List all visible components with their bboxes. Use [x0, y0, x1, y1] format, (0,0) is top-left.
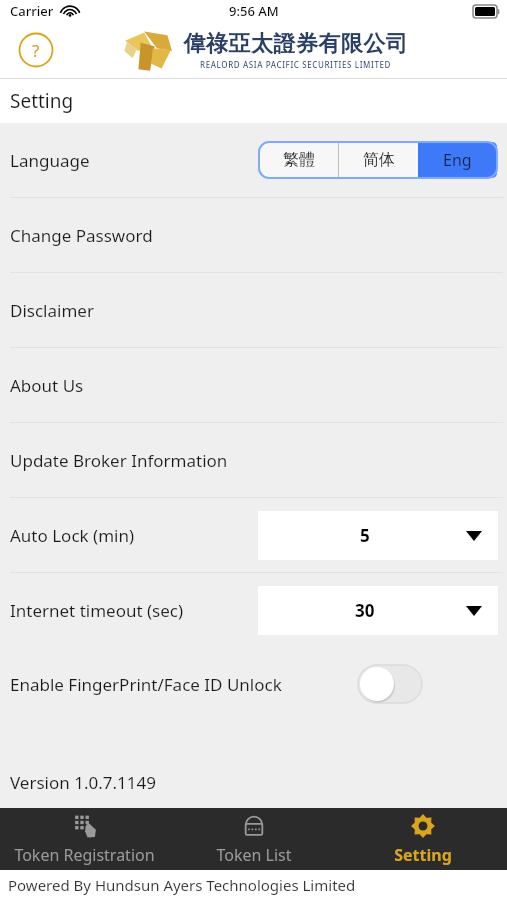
staticText: 9:56 AM	[229, 2, 279, 20]
button[interactable]: Update Broker Information	[0, 423, 507, 497]
button[interactable]: 5	[258, 511, 498, 560]
staticText: Token List	[216, 844, 292, 866]
button[interactable]: Help	[18, 32, 54, 68]
button[interactable]: Change Password	[0, 198, 507, 272]
button[interactable]: About Us	[0, 348, 507, 422]
staticText: Update Broker Information	[10, 449, 228, 472]
staticText: Change Password	[10, 224, 153, 247]
staticText: 5	[360, 524, 370, 547]
staticText: Enable FingerPrint/Face ID Unlock	[10, 673, 282, 696]
staticText: Language	[10, 149, 90, 172]
staticText: Carrier	[10, 2, 54, 20]
staticText: REALORD ASIA PACIFIC SECURITIES LIMITED	[200, 59, 392, 70]
button[interactable]: Token Registration	[0, 808, 169, 870]
staticText: Setting	[10, 88, 74, 114]
staticText: Disclaimer	[10, 299, 94, 322]
staticText: ?	[32, 39, 40, 62]
staticText: Setting	[394, 844, 452, 866]
staticText: 简体	[363, 150, 395, 170]
staticText: About Us	[10, 374, 84, 397]
staticText: 偉祿亞太證券有限公司	[183, 30, 408, 58]
button[interactable]: Token List	[169, 808, 338, 870]
button[interactable]: 简体	[339, 142, 418, 178]
button[interactable]: Disclaimer	[0, 273, 507, 347]
staticText: Auto Lock (min)	[10, 524, 135, 547]
staticText: Internet timeout (sec)	[10, 599, 184, 622]
button[interactable]: 繁體	[259, 142, 338, 178]
staticText: Token Registration	[14, 844, 155, 866]
button[interactable]: Setting	[338, 808, 507, 870]
staticText: 繁體	[283, 150, 315, 170]
staticText: Powered By Hundsun Ayers Technologies Li…	[8, 875, 356, 895]
button[interactable]: 30	[258, 586, 498, 635]
staticText: Version 1.0.7.1149	[10, 771, 156, 794]
button[interactable]: Enable FingerPrint/Face ID Unlock	[0, 647, 507, 721]
staticText: 30	[355, 599, 375, 622]
staticText: Eng	[443, 149, 472, 171]
button[interactable]: Eng	[418, 142, 497, 178]
